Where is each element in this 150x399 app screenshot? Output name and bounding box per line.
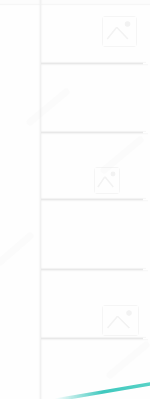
button[interactable]: List item bbox=[41, 338, 150, 399]
button[interactable]: List item bbox=[41, 269, 150, 338]
button[interactable]: List item bbox=[41, 199, 150, 269]
button[interactable]: Photo attachment bbox=[102, 16, 137, 47]
button[interactable]: List item bbox=[41, 63, 150, 132]
button[interactable]: List item bbox=[41, 132, 150, 199]
button[interactable]: Photo attachment bbox=[102, 305, 139, 336]
button[interactable]: Photo attachment bbox=[94, 167, 120, 194]
